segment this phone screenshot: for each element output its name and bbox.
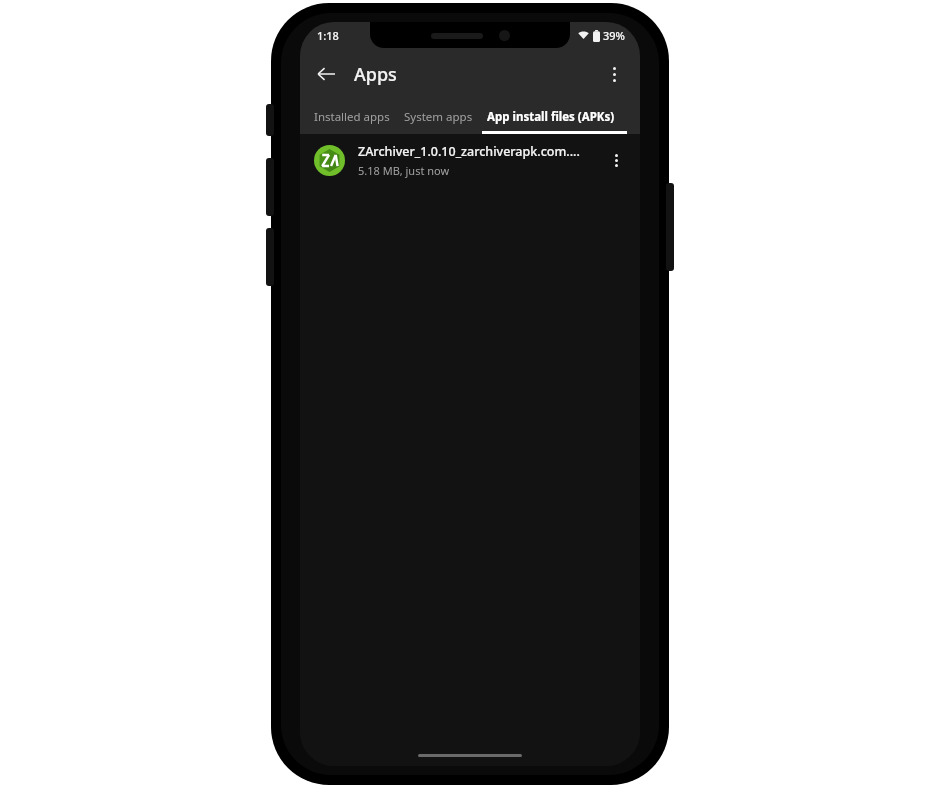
staticText: System apps — [404, 109, 473, 125]
button[interactable]: More options — [594, 54, 634, 94]
staticText: Installed apps — [314, 109, 390, 125]
button[interactable]: Item options — [598, 142, 634, 178]
staticText: 39% — [603, 28, 625, 43]
staticText: App install files (APKs) — [487, 109, 615, 125]
staticText: 1:18 — [317, 28, 339, 43]
button[interactable]: Installed apps — [307, 100, 397, 134]
staticText: ZArchiver_1.0.10_zarchiverapk.com.... — [358, 143, 580, 160]
button[interactable]: Back — [306, 54, 346, 94]
button[interactable]: App install files (APKs) — [480, 100, 622, 134]
staticText: Apps — [354, 62, 397, 87]
button[interactable]: System apps — [397, 100, 480, 134]
staticText: 5.18 MB, just now — [358, 163, 450, 178]
button[interactable]: ZArchiver_1.0.10_zarchiverapk.com.... — [300, 134, 640, 186]
